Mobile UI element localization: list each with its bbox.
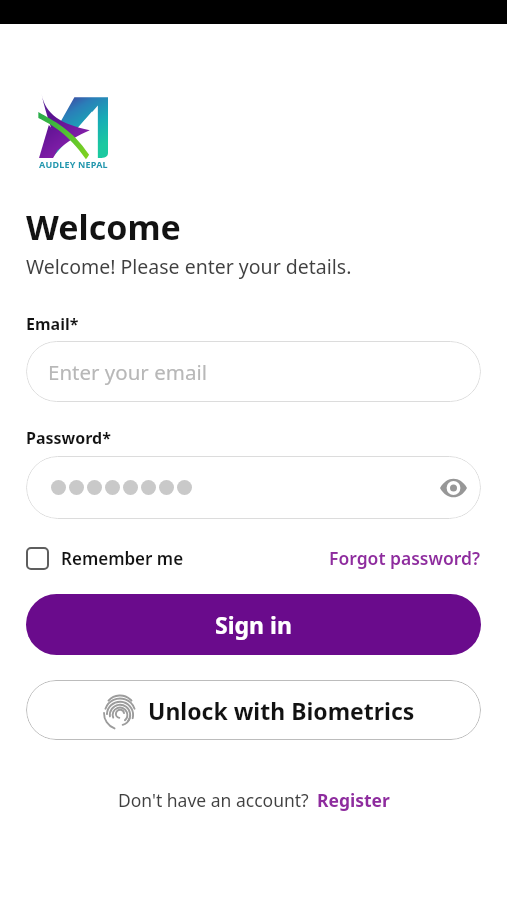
staticText: Don't have an account? [118, 788, 309, 812]
staticText: Welcome [26, 204, 181, 250]
button[interactable]: Show password [26, 456, 481, 519]
button[interactable]: Show password [436, 471, 470, 505]
staticText: Sign in [215, 609, 292, 640]
button[interactable]: Forgot password? [329, 546, 481, 570]
staticText: Register [317, 788, 390, 812]
staticText: Forgot password? [329, 546, 481, 570]
staticText: Remember me [61, 547, 184, 570]
button[interactable]: Sign in [26, 594, 481, 655]
staticText: Password* [26, 427, 111, 449]
staticText: Enter your email [48, 358, 207, 386]
button[interactable]: Enter your email [26, 341, 481, 402]
staticText: Unlock with Biometrics [148, 695, 415, 726]
staticText: AUDLEY NEPAL [39, 158, 108, 170]
staticText: Welcome! Please enter your details. [26, 253, 352, 280]
staticText: Email* [26, 313, 79, 335]
button[interactable]: Remember me [26, 547, 184, 570]
button[interactable]: Register [317, 788, 390, 812]
button[interactable]: Unlock with Biometrics [26, 680, 481, 740]
